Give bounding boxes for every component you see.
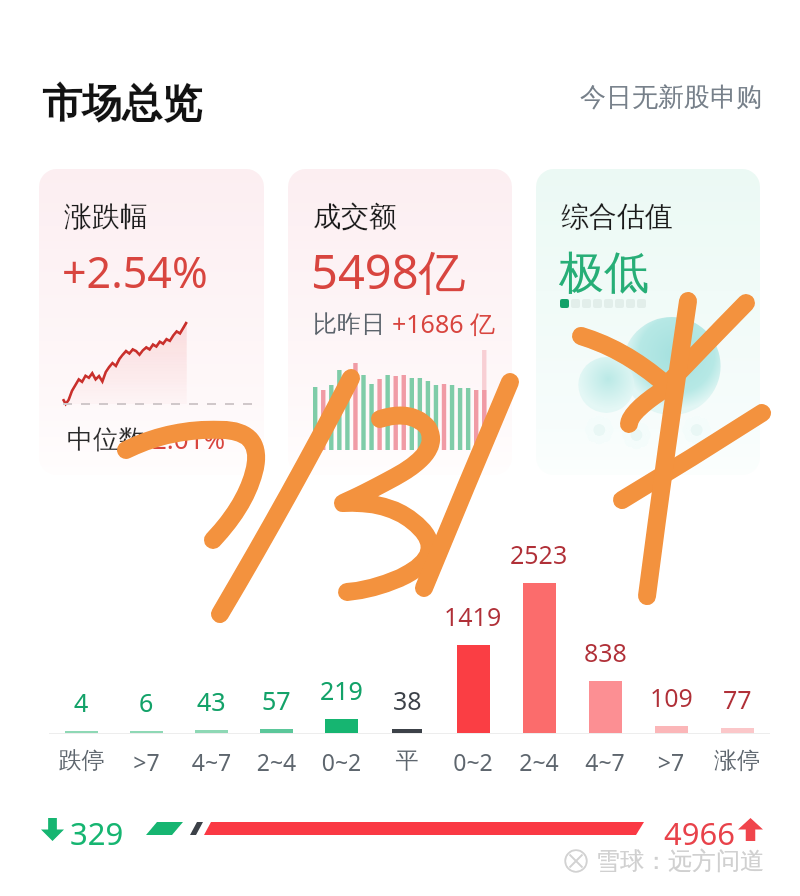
staticText: 1419: [444, 599, 502, 633]
staticText: 329: [70, 812, 124, 854]
staticText: 平: [374, 746, 440, 775]
staticText: 涨跌幅: [64, 199, 148, 234]
staticText: >7: [638, 746, 704, 777]
staticText: 219: [320, 673, 363, 707]
button[interactable]: 涨跌幅: [39, 169, 264, 475]
staticText: 0~2: [309, 746, 374, 777]
staticText: 838: [584, 635, 627, 669]
staticText: 4966: [664, 812, 735, 854]
button[interactable]: 综合估值: [536, 169, 760, 475]
staticText: 109: [650, 680, 693, 714]
staticText: 0~2: [440, 746, 506, 777]
button[interactable]: 成交额: [288, 169, 512, 475]
staticText: 4~7: [179, 746, 244, 777]
staticText: 5498亿: [311, 239, 466, 303]
button[interactable]: 下跌家数: [0, 806, 800, 854]
staticText: >7: [114, 746, 179, 777]
other: 下跌家数: [41, 818, 64, 841]
staticText: 今日无新股申购: [580, 81, 762, 114]
staticText: 2~4: [244, 746, 309, 777]
staticText: 77: [723, 682, 752, 716]
staticText: 雪球：远方问道: [596, 846, 764, 876]
staticText: 涨停: [704, 746, 770, 775]
other: 上涨家数: [738, 818, 763, 841]
staticText: 中位数: [67, 420, 152, 456]
staticText: 综合估值: [561, 199, 673, 234]
staticText: 市场总览: [42, 78, 202, 128]
staticText: +1686 亿: [392, 306, 496, 340]
staticText: 4: [74, 685, 89, 719]
staticText: 极低: [559, 245, 649, 302]
staticText: 跌停: [49, 746, 114, 775]
staticText: +2.54%: [62, 242, 208, 301]
staticText: 成交额: [313, 199, 397, 234]
staticText: 6: [139, 685, 154, 719]
staticText: 2.01%: [152, 421, 226, 456]
staticText: 比昨日: [313, 306, 392, 339]
staticText: 38: [393, 683, 422, 717]
staticText: 2523: [510, 537, 568, 571]
staticText: 4~7: [572, 746, 638, 777]
staticText: 57: [262, 683, 291, 717]
staticText: 2~4: [506, 746, 572, 777]
staticText: 43: [197, 684, 226, 718]
